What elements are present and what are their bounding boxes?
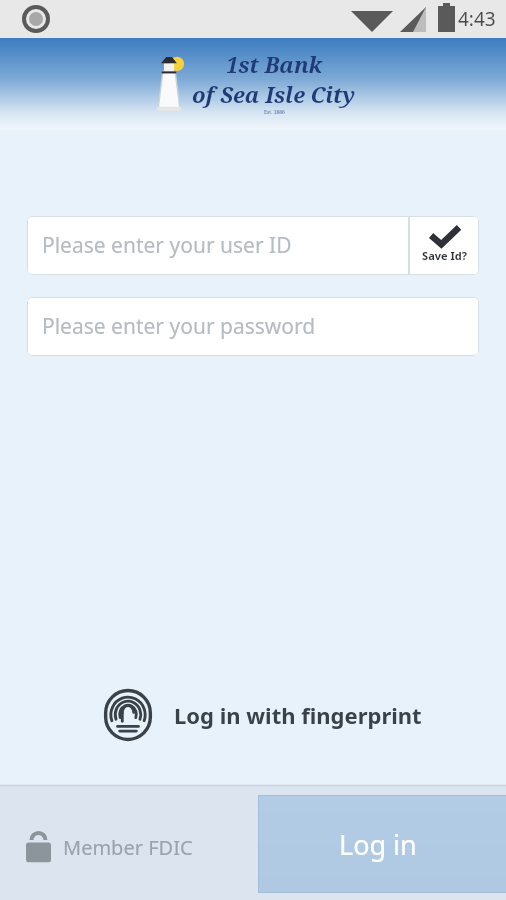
button[interactable]: Log in bbox=[258, 795, 506, 893]
staticText: Log in bbox=[339, 826, 417, 863]
button[interactable]: Please enter your user ID bbox=[27, 216, 409, 275]
staticText: of Sea Isle City bbox=[192, 79, 356, 109]
other: Secure bbox=[26, 831, 51, 863]
staticText: 4:43 bbox=[458, 6, 496, 32]
button[interactable]: Log in with fingerprint bbox=[98, 685, 426, 745]
staticText: Est. 1886 bbox=[264, 109, 285, 116]
button[interactable]: Save Id? bbox=[409, 216, 479, 275]
staticText: Member FDIC bbox=[63, 834, 193, 861]
staticText: Please enter your password bbox=[42, 312, 316, 341]
staticText: Log in with fingerprint bbox=[174, 700, 422, 730]
button[interactable]: Please enter your password bbox=[27, 297, 479, 356]
staticText: Please enter your user ID bbox=[42, 231, 292, 260]
other: Log in with fingerprint bbox=[102, 689, 154, 741]
button[interactable]: Secure bbox=[26, 831, 193, 863]
staticText: 1st Bank bbox=[226, 49, 322, 79]
staticText: Save Id? bbox=[422, 248, 467, 263]
